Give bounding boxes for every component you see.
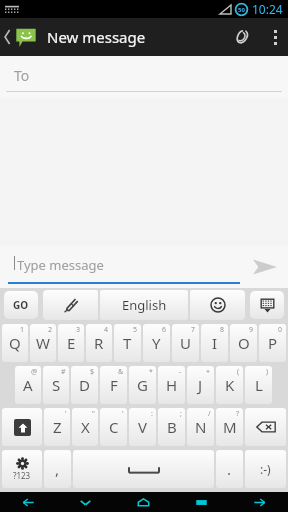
button[interactable]: :-) <box>245 450 286 488</box>
button[interactable]: O <box>230 324 257 362</box>
button[interactable]: L <box>245 366 272 404</box>
staticText: @ <box>31 367 38 377</box>
staticText: F <box>110 375 118 395</box>
staticText: & <box>118 367 124 377</box>
staticText: ( <box>237 367 240 377</box>
staticText: 3 <box>76 325 81 335</box>
staticText: 9 <box>249 325 254 335</box>
staticText: New message <box>47 27 146 47</box>
button[interactable]: D <box>71 366 98 404</box>
staticText: ) <box>266 367 269 377</box>
button[interactable]: T <box>114 324 141 362</box>
staticText: 1 <box>20 325 25 335</box>
staticText: 0 <box>278 325 283 335</box>
staticText: - <box>179 367 182 377</box>
button[interactable]: Y <box>143 324 170 362</box>
button[interactable] <box>0 18 41 56</box>
button[interactable]: Hide keyboard <box>250 291 284 319</box>
button[interactable]: Type message <box>8 250 240 284</box>
button[interactable]: R <box>86 324 112 362</box>
staticText: " <box>92 409 95 419</box>
staticText: GO <box>13 298 29 312</box>
button[interactable]: S <box>43 366 69 404</box>
staticText: T <box>123 333 132 353</box>
button[interactable]: Backspace <box>245 408 286 446</box>
staticText: ? <box>236 409 240 419</box>
staticText: English <box>122 296 167 314</box>
staticText: U <box>180 333 191 353</box>
staticText: * <box>149 367 153 377</box>
button[interactable]: Handwriting <box>43 290 98 320</box>
staticText: G <box>137 375 148 395</box>
button[interactable]: Send <box>242 246 288 288</box>
staticText: M <box>223 417 237 437</box>
staticText: S <box>52 375 61 395</box>
staticText: W <box>36 333 50 353</box>
button[interactable]: X <box>72 408 98 446</box>
button[interactable]: E <box>58 324 84 362</box>
staticText: 10:24 <box>252 1 283 17</box>
button[interactable]: C <box>100 408 127 446</box>
staticText: / <box>208 409 211 419</box>
staticText: 6 <box>162 325 167 335</box>
staticText: 5 <box>133 325 138 335</box>
button[interactable]: K <box>216 366 243 404</box>
button[interactable]: Space <box>73 450 214 488</box>
button[interactable]: P <box>259 324 286 362</box>
staticText: P <box>268 333 278 353</box>
staticText: . <box>227 459 232 479</box>
staticText: To <box>14 66 30 85</box>
staticText: Z <box>53 417 62 437</box>
button[interactable]: W <box>30 324 56 362</box>
button[interactable]: Shift <box>2 408 42 446</box>
button[interactable]: Emoji <box>190 290 245 320</box>
staticText: ?123 <box>13 470 31 481</box>
staticText: : <box>151 409 153 419</box>
button[interactable]: Z <box>44 408 70 446</box>
staticText: A <box>23 375 33 395</box>
button[interactable]: B <box>158 408 185 446</box>
button[interactable]: G <box>129 366 156 404</box>
staticText: Y <box>152 333 161 353</box>
staticText: X <box>81 417 90 437</box>
button[interactable]: H <box>158 366 185 404</box>
button[interactable]: J <box>187 366 214 404</box>
button[interactable]: English <box>100 290 188 320</box>
button[interactable]: A <box>15 366 41 404</box>
button[interactable]: U <box>172 324 199 362</box>
button[interactable]: Symbols and settings <box>2 450 42 488</box>
staticText: H <box>166 375 178 395</box>
staticText: :-) <box>260 461 271 477</box>
staticText: 2 <box>48 325 53 335</box>
staticText: 4 <box>104 325 109 335</box>
staticText: N <box>195 417 207 437</box>
button[interactable]: Recents <box>172 492 230 512</box>
button[interactable]: Home <box>114 492 172 512</box>
button[interactable]: Hide keyboard <box>57 492 114 512</box>
staticText: B <box>167 417 177 437</box>
button[interactable]: , <box>44 450 71 488</box>
button[interactable]: . <box>216 450 243 488</box>
button[interactable]: V <box>129 408 156 446</box>
button[interactable]: F <box>100 366 127 404</box>
staticText: $ <box>90 367 95 377</box>
staticText: + <box>206 367 211 377</box>
button[interactable]: Attach <box>222 18 262 56</box>
button[interactable]: N <box>187 408 214 446</box>
staticText: Q <box>9 333 21 353</box>
staticText: J <box>198 375 203 395</box>
staticText: 7 <box>191 325 196 335</box>
button[interactable]: GO <box>4 291 38 319</box>
button[interactable]: Forward <box>230 492 288 512</box>
staticText: ' <box>122 409 124 419</box>
button[interactable]: Back <box>0 492 57 512</box>
button[interactable]: I <box>201 324 228 362</box>
staticText: E <box>67 333 76 353</box>
button[interactable]: More options <box>262 18 288 56</box>
button[interactable]: M <box>216 408 243 446</box>
staticText: K <box>225 375 235 395</box>
staticText: L <box>255 375 263 395</box>
staticText: I <box>212 333 218 353</box>
staticText: D <box>79 375 90 395</box>
button[interactable]: Q <box>2 324 28 362</box>
